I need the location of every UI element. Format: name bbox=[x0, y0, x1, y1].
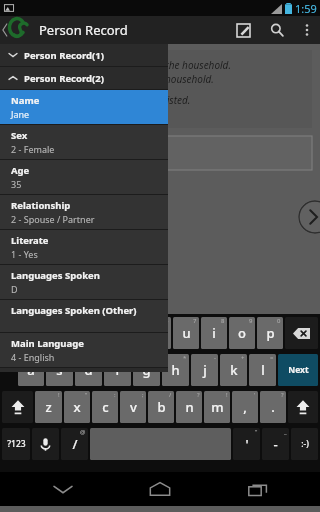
staticText: j bbox=[203, 361, 207, 379]
button[interactable]: l bbox=[249, 354, 276, 386]
staticText: i bbox=[212, 324, 216, 342]
staticText: . bbox=[271, 398, 275, 416]
staticText: g bbox=[142, 361, 151, 379]
button[interactable]: Shift bbox=[288, 391, 318, 423]
button[interactable]: j bbox=[191, 354, 218, 386]
button[interactable]: Person Record(2) bbox=[0, 67, 168, 89]
button[interactable]: r bbox=[89, 317, 115, 349]
button[interactable]: p bbox=[257, 317, 283, 349]
button[interactable]: Languages Spoken bbox=[0, 265, 168, 299]
button[interactable] bbox=[8, 136, 312, 170]
staticText: 4 - English bbox=[11, 351, 55, 363]
button[interactable]: Sex bbox=[0, 125, 168, 159]
staticText: s bbox=[56, 361, 63, 379]
button[interactable]: Voice input bbox=[32, 428, 59, 460]
button[interactable]: n bbox=[176, 391, 202, 423]
staticText: Person Record(1) bbox=[24, 49, 104, 62]
staticText: ! bbox=[226, 391, 228, 399]
button[interactable]: e bbox=[60, 317, 87, 349]
button[interactable]: x bbox=[64, 391, 90, 423]
staticText: 1 - Yes bbox=[11, 248, 38, 260]
button[interactable]: :-) bbox=[291, 428, 318, 460]
button[interactable]: Edit bbox=[226, 16, 260, 44]
button[interactable]: g bbox=[133, 354, 160, 386]
button[interactable]: c bbox=[92, 391, 118, 423]
button[interactable]: b bbox=[148, 391, 174, 423]
button[interactable]: i bbox=[201, 317, 227, 349]
button[interactable]: y bbox=[145, 317, 171, 349]
button[interactable]: Recent apps bbox=[223, 472, 293, 506]
button[interactable]: a bbox=[18, 354, 44, 386]
staticText: 8 bbox=[221, 317, 225, 325]
staticText: List every person who lives in this hous… bbox=[16, 72, 214, 86]
staticText: u bbox=[182, 324, 191, 342]
button[interactable]: Main Language bbox=[0, 333, 168, 367]
button[interactable]: t bbox=[117, 317, 143, 349]
button[interactable]: h bbox=[162, 354, 189, 386]
staticText: x bbox=[73, 398, 81, 416]
button[interactable]: v bbox=[120, 391, 146, 423]
button[interactable]: d bbox=[75, 354, 102, 386]
button[interactable]: ?123 bbox=[2, 428, 30, 460]
staticText: ! bbox=[58, 391, 60, 399]
button[interactable]: Age bbox=[0, 160, 168, 194]
button[interactable]: Hide keyboard bbox=[28, 472, 98, 506]
staticText: Main Language bbox=[11, 337, 84, 350]
button[interactable]: s bbox=[46, 354, 73, 386]
staticText: a bbox=[27, 361, 35, 379]
button[interactable]: Shift bbox=[2, 391, 33, 423]
button[interactable]: . bbox=[260, 391, 286, 423]
button[interactable]: Backspace bbox=[285, 317, 318, 349]
staticText: ' bbox=[245, 435, 249, 453]
staticText: r bbox=[99, 324, 105, 342]
staticText: @ bbox=[36, 354, 42, 362]
button[interactable]: o bbox=[229, 317, 255, 349]
button[interactable]: w bbox=[31, 317, 58, 349]
button[interactable]: Person Record(1) bbox=[0, 44, 168, 66]
staticText: _ bbox=[284, 428, 287, 436]
button[interactable]: k bbox=[220, 354, 247, 386]
button[interactable]: More options bbox=[294, 16, 320, 44]
button[interactable]: Literate bbox=[0, 230, 168, 264]
button[interactable]: , bbox=[232, 391, 258, 423]
button[interactable]: Next bbox=[298, 200, 320, 234]
button[interactable]: / bbox=[61, 428, 88, 460]
button[interactable]: Languages Spoken (Other) bbox=[0, 300, 168, 332]
button[interactable]: ' bbox=[233, 428, 260, 460]
button[interactable]: Name bbox=[0, 90, 168, 124]
button[interactable]: - bbox=[262, 428, 289, 460]
button[interactable]: Navigate up bbox=[0, 16, 35, 44]
button[interactable]: m bbox=[204, 391, 230, 423]
button[interactable]: Home bbox=[125, 472, 195, 506]
staticText: @ bbox=[80, 428, 86, 436]
button[interactable]: Search bbox=[260, 16, 294, 44]
staticText: * bbox=[183, 354, 187, 362]
staticText: - bbox=[214, 354, 216, 362]
staticText: 9 bbox=[249, 317, 253, 325]
staticText: = bbox=[270, 354, 274, 362]
button[interactable]: z bbox=[35, 391, 62, 423]
button[interactable]: f bbox=[104, 354, 131, 386]
staticText: o bbox=[238, 324, 246, 342]
button[interactable]: u bbox=[173, 317, 199, 349]
staticText: D bbox=[11, 283, 18, 295]
button[interactable]: Next bbox=[278, 354, 318, 386]
staticText: / bbox=[169, 391, 172, 399]
button[interactable]: Relationship bbox=[0, 195, 168, 229]
staticText: Languages Spoken (Other) bbox=[11, 304, 137, 317]
staticText: l bbox=[261, 361, 265, 379]
staticText: Age bbox=[11, 164, 30, 177]
button[interactable]: q bbox=[2, 317, 29, 349]
staticText: z bbox=[45, 398, 52, 416]
staticText: Languages Spoken bbox=[11, 269, 100, 282]
staticText: 2 - Spouse / Partner bbox=[11, 213, 95, 225]
staticText: w bbox=[39, 324, 50, 342]
staticText: ?123 bbox=[7, 438, 26, 450]
